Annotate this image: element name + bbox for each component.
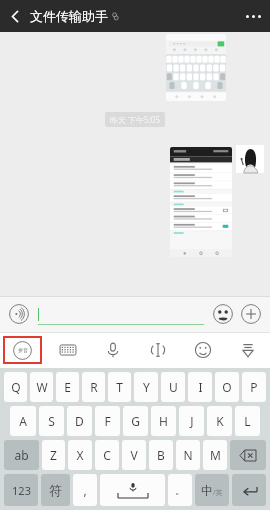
button[interactable]: Pinyin input [5, 338, 40, 362]
button[interactable]: W [30, 372, 53, 402]
button[interactable]: 。 [168, 474, 192, 506]
button[interactable]: H [151, 406, 176, 436]
staticText: M [210, 447, 221, 463]
button[interactable]: Voice input [8, 303, 30, 325]
button[interactable]: Emoji [212, 303, 234, 325]
staticText: I [198, 379, 203, 395]
staticText: H [159, 413, 168, 429]
button[interactable]: U [161, 372, 185, 402]
staticText: O [222, 379, 232, 395]
staticText: W [36, 379, 48, 395]
staticText: G [131, 413, 140, 429]
staticText: Y [143, 379, 150, 395]
button[interactable]: Y [134, 372, 158, 402]
staticText: T [116, 379, 123, 395]
button[interactable]: Emoji [180, 332, 225, 368]
button[interactable]: I [188, 372, 212, 402]
staticText: V [130, 447, 138, 463]
staticText: J [190, 413, 194, 429]
staticText: 昨天 下午5:05 [110, 114, 160, 125]
button[interactable]: Voice input [90, 332, 135, 368]
staticText: D [75, 413, 84, 429]
button[interactable]: D [67, 406, 92, 436]
button[interactable]: S [39, 406, 64, 436]
button[interactable]: N [176, 440, 200, 470]
button[interactable]: Keyboard layout [45, 332, 90, 368]
staticText: N [183, 447, 193, 463]
staticText: 拼音 [18, 347, 28, 353]
staticText: A [19, 413, 27, 429]
button[interactable]: R [82, 372, 105, 402]
staticText: 。 [175, 484, 185, 497]
button[interactable]: 123 [4, 474, 38, 506]
button[interactable]: C [95, 440, 119, 470]
staticText: B [157, 447, 165, 463]
staticText: /英 [213, 488, 223, 498]
staticText: F [104, 413, 111, 429]
staticText: ab [14, 447, 29, 463]
button[interactable]: F [95, 406, 120, 436]
button[interactable]: Image message [166, 34, 226, 101]
button[interactable]: Enter [232, 474, 266, 506]
staticText: P [250, 379, 258, 395]
staticText: K [216, 413, 224, 429]
button[interactable]: ab [4, 440, 39, 470]
button[interactable]: A [10, 406, 36, 436]
button[interactable]: Avatar [236, 145, 264, 173]
button[interactable]: 中 [195, 474, 229, 506]
button[interactable]: P [242, 372, 266, 402]
staticText: X [76, 447, 84, 463]
button[interactable]: Space [100, 474, 165, 506]
button[interactable]: , [73, 474, 97, 506]
button[interactable]: More options [236, 0, 270, 32]
staticText: S [48, 413, 55, 429]
staticText: 123 [12, 483, 31, 498]
button[interactable]: O [215, 372, 239, 402]
button[interactable]: Image message [170, 147, 232, 257]
button[interactable]: Q [4, 372, 27, 402]
button[interactable]: X [68, 440, 92, 470]
staticText: R [90, 379, 98, 395]
staticText: E [64, 379, 71, 395]
button[interactable]: 符 [41, 474, 70, 506]
button[interactable]: G [123, 406, 148, 436]
button[interactable]: L [235, 406, 260, 436]
button[interactable]: K [207, 406, 232, 436]
button[interactable] [38, 303, 204, 325]
staticText: C [103, 447, 111, 463]
button[interactable]: Z [42, 440, 65, 470]
staticText: Z [50, 447, 57, 463]
staticText: U [169, 379, 178, 395]
button[interactable]: More functions [240, 303, 262, 325]
button[interactable]: E [56, 372, 79, 402]
staticText: 中 [201, 483, 213, 498]
button[interactable]: B [149, 440, 173, 470]
button[interactable]: Handwriting [135, 332, 180, 368]
button[interactable]: V [122, 440, 146, 470]
button[interactable]: Back [0, 0, 30, 32]
button[interactable]: J [179, 406, 204, 436]
staticText: Q [11, 379, 21, 395]
staticText: L [244, 413, 251, 429]
button[interactable]: Hide keyboard [225, 332, 270, 368]
button[interactable]: Backspace [230, 440, 266, 470]
staticText: , [83, 482, 87, 498]
button[interactable]: T [108, 372, 131, 402]
staticText: 文件传输助手 [30, 8, 108, 24]
staticText: 符 [49, 482, 62, 498]
button[interactable]: M [203, 440, 227, 470]
